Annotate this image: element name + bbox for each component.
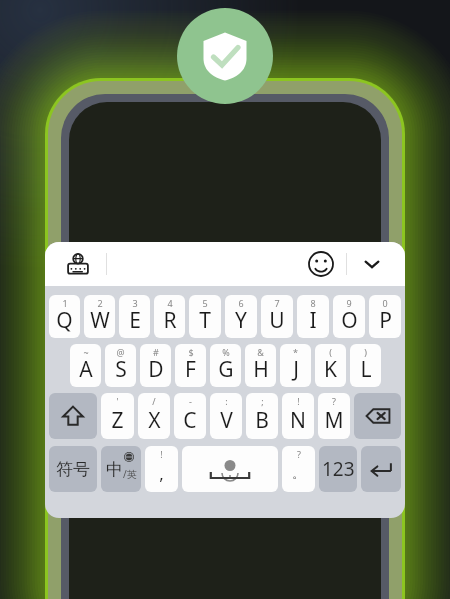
staticText: ' — [116, 395, 119, 407]
button[interactable]: ! — [282, 393, 314, 439]
button[interactable]: 0 — [369, 295, 401, 338]
staticText: ( — [329, 346, 332, 358]
staticText: E — [129, 306, 141, 335]
staticText: B — [255, 406, 269, 435]
button[interactable]: / — [138, 393, 170, 439]
button[interactable]: % — [210, 344, 241, 387]
staticText: Z — [111, 406, 124, 435]
button[interactable]: # — [140, 344, 171, 387]
button[interactable]: Secure — [177, 8, 273, 104]
staticText: ) — [364, 346, 367, 358]
staticText: & — [257, 346, 264, 358]
button[interactable]: ? — [282, 446, 315, 492]
staticText: G — [218, 355, 234, 384]
staticText: I — [309, 306, 317, 335]
button[interactable]: 1 — [49, 295, 80, 338]
button[interactable]: - — [174, 393, 206, 439]
staticText: Y — [235, 306, 247, 335]
button[interactable]: ? — [318, 393, 350, 439]
staticText: 中 — [106, 459, 123, 480]
staticText: C — [183, 406, 197, 435]
button[interactable]: * — [280, 344, 311, 387]
staticText: ? — [332, 395, 336, 407]
button[interactable]: 8 — [297, 295, 329, 338]
staticText: % — [222, 346, 230, 358]
staticText: 123 — [322, 456, 355, 482]
button[interactable]: 7 — [261, 295, 293, 338]
staticText: F — [185, 355, 196, 384]
staticText: X — [148, 406, 161, 435]
button[interactable]: 符号 — [49, 446, 97, 492]
button[interactable]: Hide keyboard — [353, 245, 391, 283]
button[interactable]: Switch keyboard — [59, 245, 97, 283]
staticText: @ — [116, 346, 125, 358]
button[interactable]: 中 — [101, 446, 141, 492]
staticText: / — [152, 395, 156, 407]
button[interactable]: 6 — [225, 295, 257, 338]
button[interactable]: : — [210, 393, 242, 439]
staticText: M — [324, 406, 344, 435]
staticText: 。 — [292, 465, 305, 481]
staticText: 0 — [382, 297, 388, 309]
staticText: 1 — [62, 297, 68, 309]
button[interactable]: 123 — [319, 446, 357, 492]
button[interactable]: Space — [182, 446, 278, 492]
staticText: U — [269, 306, 285, 335]
button[interactable]: ~ — [70, 344, 101, 387]
button[interactable]: $ — [175, 344, 206, 387]
staticText: ; — [261, 395, 264, 407]
button[interactable]: 5 — [189, 295, 221, 338]
staticText: /英 — [123, 467, 137, 481]
staticText: 符号 — [56, 459, 90, 480]
button[interactable]: & — [245, 344, 276, 387]
button[interactable]: ' — [101, 393, 134, 439]
button[interactable]: ( — [315, 344, 346, 387]
staticText: S — [115, 355, 127, 384]
staticText: N — [290, 406, 306, 435]
staticText: K — [324, 355, 337, 384]
staticText: 7 — [274, 297, 280, 309]
button[interactable]: ; — [246, 393, 278, 439]
staticText: 5 — [202, 297, 208, 309]
staticText: 4 — [167, 297, 173, 309]
staticText: 2 — [97, 297, 103, 309]
button[interactable]: Backspace — [354, 393, 401, 439]
staticText: 9 — [346, 297, 352, 309]
staticText: R — [163, 306, 177, 335]
staticText: 6 — [238, 297, 244, 309]
button[interactable]: ! — [145, 446, 178, 492]
button[interactable]: Emoji — [302, 245, 340, 283]
staticText: ! — [160, 448, 163, 460]
staticText: P — [379, 306, 392, 335]
staticText: D — [148, 355, 164, 384]
staticText: V — [220, 406, 233, 435]
staticText: - — [189, 395, 192, 407]
button[interactable]: Shift — [49, 393, 97, 439]
staticText: 3 — [132, 297, 138, 309]
staticText: T — [199, 306, 211, 335]
staticText: * — [293, 346, 298, 358]
staticText: W — [90, 306, 110, 335]
button[interactable]: Enter — [361, 446, 401, 492]
staticText: , — [159, 462, 164, 485]
staticText: H — [253, 355, 269, 384]
staticText: : — [225, 395, 228, 407]
staticText: ~ — [83, 346, 89, 358]
button[interactable]: 9 — [333, 295, 365, 338]
staticText: ! — [297, 395, 300, 407]
staticText: $ — [188, 346, 194, 358]
staticText: # — [153, 346, 159, 358]
staticText: 8 — [310, 297, 316, 309]
staticText: ? — [297, 448, 301, 460]
staticText: L — [360, 355, 372, 384]
button[interactable]: 4 — [154, 295, 185, 338]
staticText: J — [293, 355, 299, 384]
button[interactable]: @ — [105, 344, 136, 387]
button[interactable]: 2 — [84, 295, 115, 338]
button[interactable]: ) — [350, 344, 381, 387]
button[interactable]: 3 — [119, 295, 150, 338]
staticText: Q — [56, 306, 73, 335]
staticText: O — [341, 306, 358, 335]
staticText: A — [79, 355, 93, 384]
